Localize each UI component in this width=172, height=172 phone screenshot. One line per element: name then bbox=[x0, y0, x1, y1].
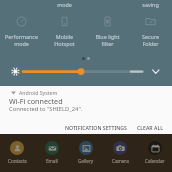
staticText: Android System bbox=[19, 89, 58, 96]
staticText: Calendar bbox=[145, 158, 165, 164]
staticText: Wi-Fi connected bbox=[9, 96, 63, 106]
staticText: Gallery bbox=[78, 158, 94, 164]
staticText: Camera bbox=[112, 158, 129, 164]
staticText: Performance bbox=[0, 33, 43, 40]
button[interactable]: Blue light bbox=[86, 15, 129, 47]
button[interactable]: Secure bbox=[129, 15, 172, 47]
staticText: Blue light bbox=[86, 33, 129, 40]
staticText: Folder bbox=[129, 40, 172, 47]
button[interactable]: Contacts bbox=[0, 141, 34, 164]
button[interactable]: Brightness slider bbox=[0, 64, 172, 80]
staticText: filter bbox=[86, 40, 129, 47]
staticText: NOTIFICATION SETTINGS bbox=[65, 124, 127, 131]
button[interactable]: Camera bbox=[103, 141, 137, 164]
button[interactable]: Performance bbox=[0, 15, 43, 47]
button[interactable]: CLEAR ALL bbox=[134, 122, 166, 133]
staticText: Mobile bbox=[43, 33, 86, 40]
staticText: saving bbox=[129, 1, 172, 8]
staticText: Contacts bbox=[8, 158, 27, 164]
staticText: Email bbox=[46, 158, 58, 164]
button[interactable]: NOTIFICATION SETTINGS bbox=[62, 122, 130, 133]
staticText: Connected to "SHIELD_24". bbox=[9, 105, 83, 113]
staticText: mode bbox=[43, 1, 86, 8]
button[interactable]: Calendar bbox=[138, 141, 172, 164]
button[interactable]: Mobile bbox=[43, 15, 86, 47]
staticText: mode bbox=[0, 40, 43, 47]
button[interactable]: Gallery bbox=[69, 141, 103, 164]
staticText: Secure bbox=[129, 33, 172, 40]
staticText: Hotspot bbox=[43, 40, 86, 47]
button[interactable]: Email bbox=[35, 141, 69, 164]
staticText: CLEAR ALL bbox=[137, 124, 163, 131]
